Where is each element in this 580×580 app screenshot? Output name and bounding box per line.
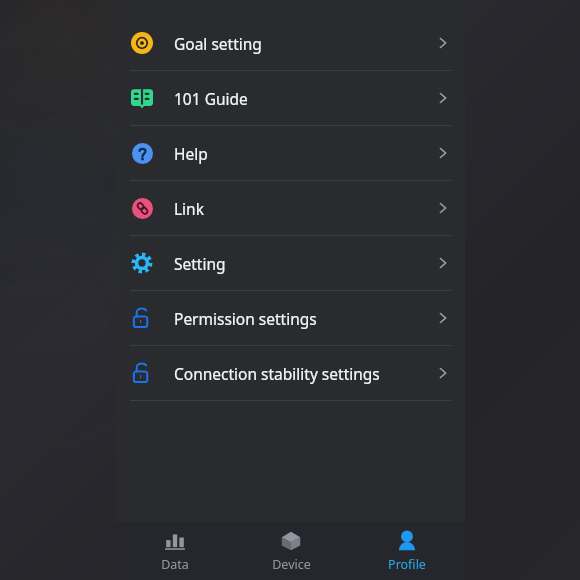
button[interactable]: Device <box>233 522 349 580</box>
staticText: Device <box>272 556 311 573</box>
button[interactable]: Profile <box>349 522 465 580</box>
button[interactable]: Connection stability settings <box>116 346 465 400</box>
staticText: Profile <box>388 556 426 573</box>
button[interactable]: 101 Guide <box>116 71 465 125</box>
staticText: Goal setting <box>174 33 262 54</box>
staticText: 101 Guide <box>174 88 248 109</box>
button[interactable]: Data <box>116 522 233 580</box>
staticText: Connection stability settings <box>174 363 380 384</box>
staticText: Link <box>174 198 204 219</box>
button[interactable]: Goal setting <box>116 16 465 70</box>
button[interactable]: Link <box>116 181 465 235</box>
button[interactable]: Help <box>116 126 465 180</box>
staticText: Permission settings <box>174 308 317 329</box>
staticText: Setting <box>174 253 226 274</box>
staticText: Help <box>174 143 208 164</box>
button[interactable]: Permission settings <box>116 291 465 345</box>
button[interactable]: Setting <box>116 236 465 290</box>
staticText: Data <box>161 556 189 573</box>
